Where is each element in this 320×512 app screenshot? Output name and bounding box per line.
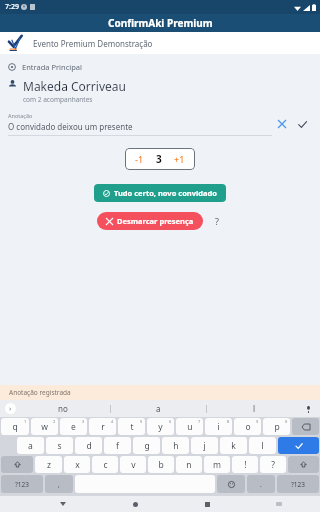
button[interactable]: s bbox=[46, 437, 73, 454]
button[interactable]: p bbox=[263, 418, 290, 435]
staticText: 9 bbox=[256, 419, 259, 424]
staticText: y bbox=[158, 421, 163, 433]
button[interactable]: Entrada por voz bbox=[302, 403, 314, 415]
button[interactable]: g bbox=[133, 437, 160, 454]
button[interactable]: -1 bbox=[125, 148, 195, 170]
staticText: 6 bbox=[169, 419, 172, 424]
staticText: . bbox=[260, 480, 262, 489]
staticText: d bbox=[86, 440, 92, 452]
staticText: 0 bbox=[285, 419, 288, 424]
button[interactable]: r bbox=[89, 418, 116, 435]
staticText: h bbox=[173, 440, 179, 452]
button[interactable]: d bbox=[75, 437, 102, 454]
button[interactable]: Ajuda bbox=[210, 214, 224, 228]
staticText: m bbox=[213, 459, 221, 471]
button[interactable]: Início bbox=[127, 496, 143, 512]
button[interactable]: Limpar anotação bbox=[272, 114, 292, 134]
staticText: 8 bbox=[227, 419, 230, 424]
button[interactable]: Mais sugestões bbox=[5, 403, 16, 414]
button[interactable]: Desmarcar presença bbox=[97, 212, 203, 230]
button[interactable]: Enter bbox=[278, 437, 319, 454]
staticText: O convidado deixou um presente bbox=[8, 121, 133, 132]
button[interactable]: q bbox=[1, 418, 29, 435]
button[interactable]: Ocultar teclado bbox=[271, 496, 287, 512]
staticText: , bbox=[58, 480, 60, 489]
staticText: -1 bbox=[135, 153, 144, 165]
staticText: q bbox=[12, 421, 18, 433]
staticText: 7 bbox=[198, 419, 201, 424]
button[interactable]: b bbox=[148, 456, 174, 473]
button[interactable]: o bbox=[234, 418, 261, 435]
staticText: 1 bbox=[24, 419, 27, 424]
staticText: Anotação bbox=[8, 112, 33, 119]
staticText: l bbox=[261, 440, 264, 452]
staticText: a bbox=[156, 403, 161, 414]
button[interactable]: , bbox=[45, 475, 73, 493]
button[interactable]: Entrada Principal bbox=[0, 62, 320, 72]
button[interactable]: Apagar bbox=[292, 418, 319, 435]
staticText: w bbox=[41, 421, 48, 433]
button[interactable]: ?123 bbox=[277, 475, 319, 493]
staticText: t bbox=[130, 421, 134, 433]
button[interactable]: Evento Premium Demonstração bbox=[0, 32, 320, 54]
button[interactable]: a bbox=[17, 437, 44, 454]
button[interactable]: m bbox=[204, 456, 230, 473]
button[interactable]: Emoji bbox=[217, 475, 245, 493]
staticText: 7:29 bbox=[5, 2, 19, 12]
button[interactable]: c bbox=[92, 456, 118, 473]
staticText: Anotação registrada bbox=[9, 388, 71, 397]
button[interactable]: h bbox=[162, 437, 189, 454]
staticText: x bbox=[75, 459, 80, 471]
staticText: z bbox=[47, 459, 51, 471]
staticText: 3 bbox=[156, 152, 162, 166]
staticText: 3 bbox=[82, 419, 85, 424]
button[interactable]: ? bbox=[260, 456, 286, 473]
button[interactable]: ! bbox=[232, 456, 258, 473]
button[interactable]: w bbox=[31, 418, 58, 435]
staticText: Evento Premium Demonstração bbox=[33, 38, 153, 49]
staticText: com 2 acompanhantes bbox=[23, 95, 93, 104]
button[interactable]: i bbox=[205, 418, 232, 435]
button[interactable]: y bbox=[147, 418, 174, 435]
button[interactable]: Tudo certo, novo convidado bbox=[94, 184, 226, 202]
button[interactable]: Salvar anotação bbox=[292, 114, 312, 134]
staticText: a bbox=[28, 440, 33, 452]
button[interactable]: u bbox=[176, 418, 203, 435]
staticText: ConfirmAki Premium bbox=[108, 16, 213, 30]
staticText: ! bbox=[244, 459, 247, 471]
staticText: g bbox=[144, 440, 150, 452]
staticText: ?123 bbox=[15, 480, 29, 489]
button[interactable]: . bbox=[247, 475, 275, 493]
button[interactable]: e bbox=[60, 418, 87, 435]
staticText: v bbox=[131, 459, 136, 471]
button[interactable]: j bbox=[191, 437, 218, 454]
staticText: p bbox=[274, 421, 280, 433]
staticText: 2 bbox=[53, 419, 56, 424]
staticText: n bbox=[186, 459, 192, 471]
staticText: k bbox=[231, 440, 236, 452]
button[interactable]: ?123 bbox=[1, 475, 43, 493]
button[interactable]: l bbox=[249, 437, 276, 454]
button[interactable]: Shift bbox=[1, 456, 33, 473]
staticText: 5 bbox=[140, 419, 143, 424]
button[interactable]: Voltar bbox=[55, 496, 71, 512]
button[interactable]: f bbox=[104, 437, 131, 454]
button[interactable]: t bbox=[118, 418, 145, 435]
staticText: Tudo certo, novo convidado bbox=[114, 188, 217, 198]
button[interactable]: Recentes bbox=[199, 496, 215, 512]
staticText: r bbox=[101, 421, 105, 433]
button[interactable]: k bbox=[220, 437, 247, 454]
button[interactable]: Shift bbox=[288, 456, 319, 473]
staticText: b bbox=[158, 459, 164, 471]
staticText: f bbox=[116, 440, 119, 452]
staticText: +1 bbox=[174, 153, 185, 165]
button[interactable]: n bbox=[176, 456, 202, 473]
staticText: › bbox=[9, 404, 12, 414]
staticText: c bbox=[103, 459, 108, 471]
button[interactable]: z bbox=[35, 456, 62, 473]
staticText: no bbox=[58, 403, 68, 414]
button[interactable]: v bbox=[120, 456, 146, 473]
staticText: 4 bbox=[111, 419, 114, 424]
button[interactable]: x bbox=[64, 456, 90, 473]
